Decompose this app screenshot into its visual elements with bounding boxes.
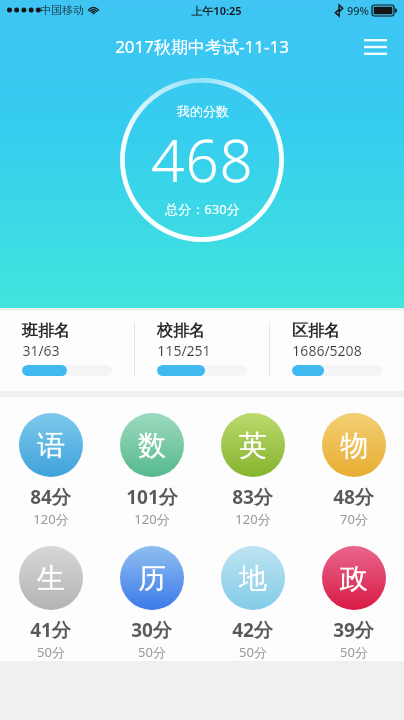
button[interactable]: 数: [101, 413, 202, 528]
staticText: 120分: [33, 510, 69, 528]
staticText: 42分: [232, 617, 273, 643]
staticText: 83分: [232, 484, 273, 510]
staticText: 总分：630分: [165, 200, 240, 218]
staticText: 历: [138, 561, 166, 596]
staticText: 中国移动: [40, 3, 84, 17]
staticText: 50分: [37, 643, 65, 661]
staticText: 2017秋期中考试-11-13: [115, 35, 289, 58]
staticText: 50分: [239, 643, 267, 661]
staticText: 31/63: [22, 341, 60, 360]
staticText: 70分: [340, 510, 368, 528]
staticText: 数: [138, 428, 166, 463]
staticText: 120分: [235, 510, 271, 528]
button[interactable]: 生: [0, 546, 101, 661]
button[interactable]: 班排名: [0, 311, 134, 376]
staticText: 政: [340, 561, 368, 596]
button[interactable]: 英: [202, 413, 303, 528]
staticText: 语: [37, 428, 65, 463]
staticText: 468: [151, 120, 254, 199]
button[interactable]: 历: [101, 546, 202, 661]
staticText: 地: [239, 561, 267, 596]
button[interactable]: 政: [303, 546, 404, 661]
button[interactable]: Menu: [354, 26, 396, 68]
staticText: 区排名: [292, 321, 340, 341]
staticText: 物: [340, 428, 368, 463]
staticText: 1686/5208: [292, 341, 362, 360]
staticText: 50分: [138, 643, 166, 661]
staticText: 101分: [126, 484, 178, 510]
staticText: 我的分数: [177, 103, 229, 119]
staticText: 50分: [340, 643, 368, 661]
button[interactable]: 物: [303, 413, 404, 528]
staticText: 39分: [333, 617, 374, 643]
button[interactable]: 地: [202, 546, 303, 661]
staticText: 英: [239, 428, 267, 463]
button[interactable]: 校排名: [135, 311, 269, 376]
staticText: 41分: [30, 617, 71, 643]
staticText: 30分: [131, 617, 172, 643]
staticText: 115/251: [157, 341, 211, 360]
staticText: 120分: [134, 510, 170, 528]
staticText: 上午10:25: [191, 3, 242, 18]
button[interactable]: 语: [0, 413, 101, 528]
staticText: 84分: [30, 484, 71, 510]
staticText: 48分: [333, 484, 374, 510]
button[interactable]: 区排名: [270, 311, 404, 376]
staticText: 校排名: [157, 321, 205, 341]
staticText: 99%: [347, 3, 369, 18]
staticText: 班排名: [22, 321, 70, 341]
staticText: 生: [37, 561, 65, 596]
